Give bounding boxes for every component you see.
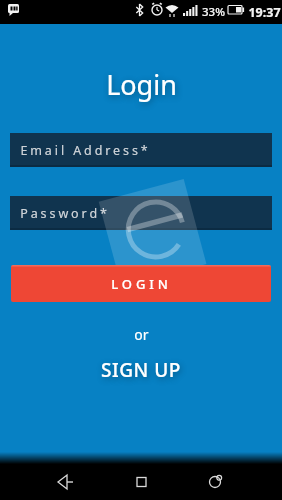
button[interactable]: Email Address* bbox=[10, 133, 272, 167]
staticText: LOGIN bbox=[111, 275, 172, 293]
button[interactable] bbox=[94, 464, 188, 500]
button[interactable] bbox=[0, 464, 94, 500]
button[interactable] bbox=[188, 464, 282, 500]
staticText: 19:37 bbox=[248, 4, 281, 21]
staticText: Login bbox=[106, 66, 177, 103]
staticText: Email Address* bbox=[20, 142, 151, 159]
button[interactable]: LOGIN bbox=[11, 265, 271, 302]
button[interactable]: SIGN UP bbox=[101, 357, 181, 383]
staticText: Password* bbox=[20, 205, 110, 222]
staticText: SIGN UP bbox=[101, 357, 181, 383]
button[interactable]: Password* bbox=[10, 196, 272, 230]
staticText: 33% bbox=[202, 4, 225, 20]
staticText: or bbox=[134, 325, 149, 344]
